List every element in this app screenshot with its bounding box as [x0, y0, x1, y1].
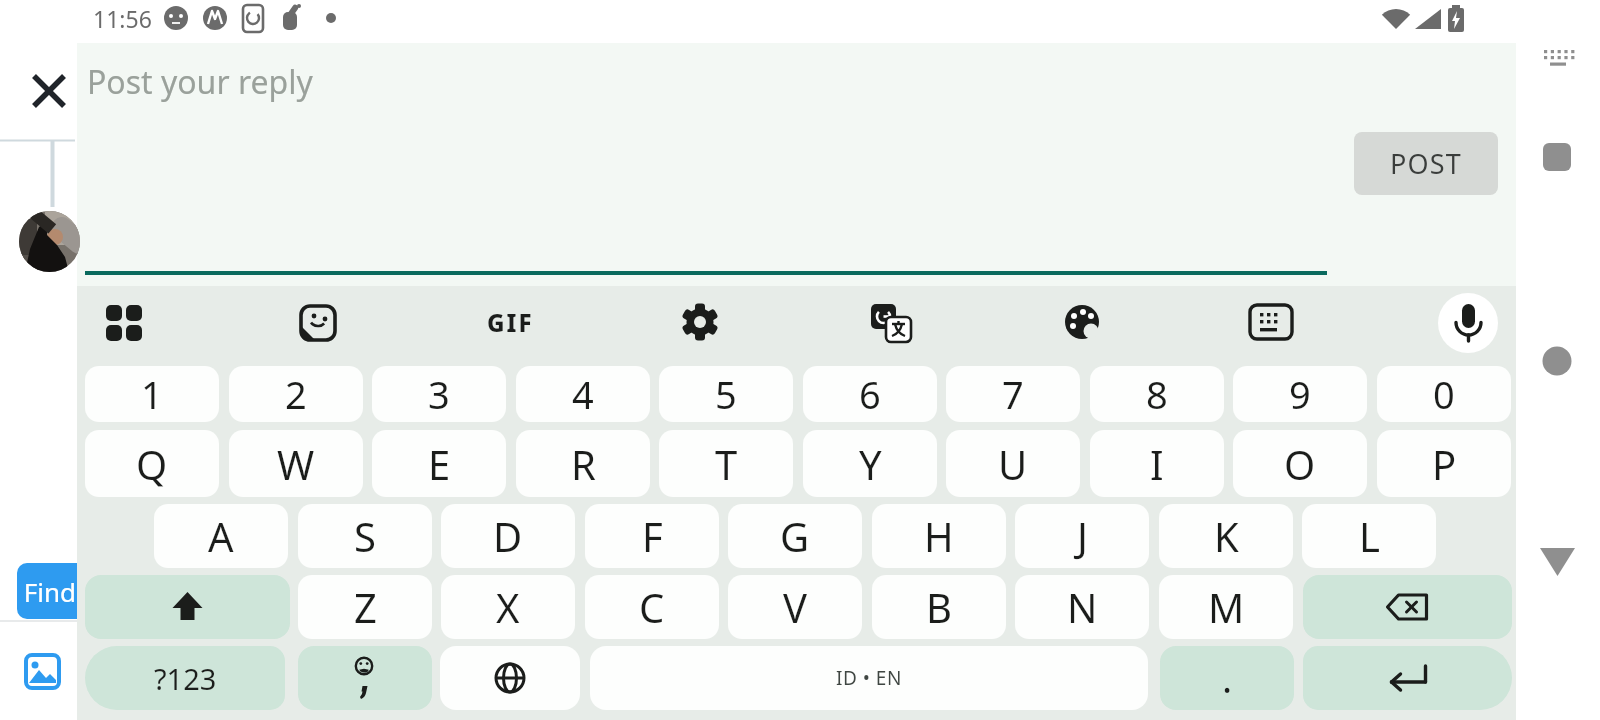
button[interactable]	[85, 575, 290, 639]
button[interactable]	[24, 653, 62, 691]
staticText: X	[496, 580, 520, 634]
staticText: A	[208, 509, 234, 563]
staticText: U	[998, 437, 1028, 491]
staticText: N	[1067, 580, 1098, 634]
staticText: 5	[715, 368, 737, 420]
staticText: F	[642, 509, 663, 563]
button[interactable]	[869, 302, 913, 342]
button[interactable]: 5	[659, 366, 793, 422]
button[interactable]: T	[659, 430, 793, 497]
staticText: R	[571, 437, 596, 491]
button[interactable]	[1062, 302, 1102, 342]
button[interactable]	[1539, 42, 1575, 74]
button[interactable]	[104, 302, 144, 342]
button[interactable]: K	[1159, 504, 1293, 568]
staticText: 0	[1433, 368, 1455, 420]
button[interactable]: 3	[372, 366, 506, 422]
staticText: 11:56	[93, 3, 152, 33]
staticText: POST	[1390, 145, 1463, 182]
button[interactable]: 4	[516, 366, 650, 422]
button[interactable]: M	[1159, 575, 1293, 639]
button[interactable]: F	[585, 504, 719, 568]
button[interactable]: O	[1233, 430, 1367, 497]
button[interactable]: 1	[85, 366, 219, 422]
staticText: J	[1077, 509, 1088, 563]
button[interactable]: N	[1015, 575, 1149, 639]
button[interactable]: 0	[1377, 366, 1511, 422]
staticText: 4	[572, 368, 594, 420]
staticText: B	[926, 580, 952, 634]
staticText: 3	[428, 368, 450, 420]
button[interactable]: ?123	[85, 646, 285, 710]
button[interactable]	[1248, 302, 1294, 342]
staticText: E	[428, 437, 451, 491]
button[interactable]: 2	[229, 366, 363, 422]
staticText: 8	[1146, 368, 1168, 420]
staticText: 6	[859, 368, 881, 420]
button[interactable]	[440, 646, 580, 710]
staticText: D	[493, 509, 523, 563]
staticText: ID • EN	[836, 665, 902, 691]
button[interactable]: GIF	[478, 302, 542, 342]
button[interactable]: E	[372, 430, 506, 497]
staticText: C	[639, 580, 665, 634]
staticText: W	[277, 437, 315, 491]
button[interactable]	[1438, 293, 1498, 353]
button[interactable]: V	[728, 575, 862, 639]
button[interactable]: L	[1302, 504, 1436, 568]
button[interactable]: S	[298, 504, 432, 568]
staticText: M	[1208, 580, 1245, 634]
button[interactable]: W	[229, 430, 363, 497]
staticText: Y	[859, 437, 882, 491]
button[interactable]	[1303, 575, 1512, 639]
button[interactable]: Find	[17, 563, 77, 619]
staticText: S	[354, 509, 376, 563]
button[interactable]: H	[872, 504, 1006, 568]
button[interactable]	[590, 646, 1148, 710]
button[interactable]: A	[154, 504, 288, 568]
button[interactable]: .	[1160, 646, 1294, 710]
staticText: .	[1222, 652, 1233, 704]
button[interactable]	[680, 302, 720, 342]
button[interactable]: C	[585, 575, 719, 639]
button[interactable]	[29, 71, 69, 111]
button[interactable]: G	[728, 504, 862, 568]
staticText: G	[780, 509, 810, 563]
button[interactable]: Y	[803, 430, 937, 497]
button[interactable]: P	[1377, 430, 1511, 497]
button[interactable]: I	[1090, 430, 1224, 497]
button[interactable]: X	[441, 575, 575, 639]
staticText: 2	[285, 368, 307, 420]
button[interactable]: Q	[85, 430, 219, 497]
button[interactable]: 6	[803, 366, 937, 422]
staticText: P	[1432, 437, 1457, 491]
staticText: 7	[1002, 368, 1024, 420]
staticText: 1	[141, 368, 163, 420]
button[interactable]: 8	[1090, 366, 1224, 422]
staticText: Z	[354, 580, 377, 634]
button[interactable]: U	[946, 430, 1080, 497]
staticText: Q	[136, 437, 168, 491]
staticText: L	[1359, 509, 1380, 563]
button[interactable]	[298, 646, 432, 710]
staticText: H	[924, 509, 954, 563]
button[interactable]	[1303, 646, 1512, 710]
button[interactable]: R	[516, 430, 650, 497]
button[interactable]: 7	[946, 366, 1080, 422]
button[interactable]: POST	[1354, 132, 1498, 195]
staticText: 9	[1289, 368, 1311, 420]
staticText: GIF	[487, 306, 534, 339]
staticText: O	[1284, 437, 1316, 491]
button[interactable]: B	[872, 575, 1006, 639]
button[interactable]	[1540, 546, 1575, 578]
button[interactable]: Z	[298, 575, 432, 639]
staticText: I	[1150, 437, 1164, 491]
button[interactable]: J	[1015, 504, 1149, 568]
button[interactable]: 9	[1233, 366, 1367, 422]
button[interactable]	[1543, 143, 1571, 171]
button[interactable]: D	[441, 504, 575, 568]
button[interactable]	[298, 302, 338, 342]
button[interactable]	[1542, 346, 1572, 376]
staticText: Post your reply	[87, 60, 313, 104]
staticText: T	[715, 437, 738, 491]
